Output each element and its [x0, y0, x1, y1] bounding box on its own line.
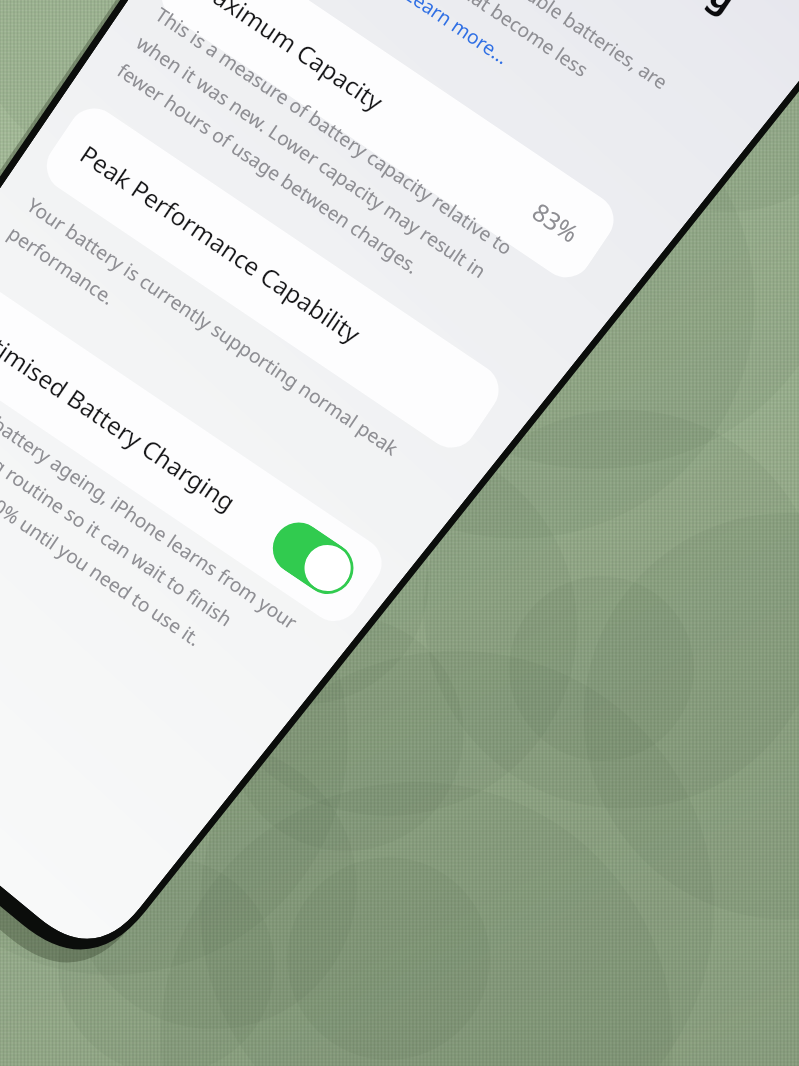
staticText: This is a measure of battery capacity re…: [113, 1, 517, 317]
staticText: To reduce battery ageing, iPhone learns …: [0, 358, 303, 691]
staticText: Peak Performance Capability: [74, 137, 367, 350]
staticText: Phone batteries, like all rechargeable b…: [238, 0, 673, 151]
button[interactable]: Peak Performance Capability: [37, 98, 509, 458]
staticText: Battery Health & Charging: [329, 0, 747, 23]
staticText: Your battery is currently supporting nor…: [3, 191, 404, 489]
staticText: Maximum Capacity: [189, 0, 390, 118]
button[interactable]: Maximum Capacity: [151, 0, 624, 288]
button[interactable]: Optimised Battery Charging toggle: [263, 512, 363, 604]
staticText: 83%: [526, 195, 586, 249]
staticText: Optimised Battery Charging: [0, 311, 243, 518]
button[interactable]: Optimised Battery Charging: [0, 272, 392, 631]
